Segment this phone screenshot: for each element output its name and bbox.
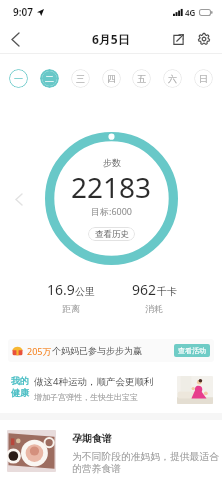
button[interactable]: 六 bbox=[163, 69, 182, 88]
staticText: 为不同阶段的准妈妈，提供最适合 的营养食谱 bbox=[72, 451, 219, 475]
staticText: 四 bbox=[107, 73, 116, 84]
staticText: 健康 bbox=[11, 387, 29, 398]
staticText: 6月5日 bbox=[92, 31, 130, 47]
button[interactable]: 一 bbox=[9, 69, 28, 88]
button[interactable]: 孕期食谱 bbox=[0, 420, 222, 480]
staticText: 4G bbox=[185, 7, 196, 18]
button[interactable]: Settings bbox=[191, 26, 217, 52]
staticText: 目标:6000 bbox=[91, 205, 133, 217]
staticText: 五 bbox=[137, 73, 146, 84]
staticText: 我的 bbox=[11, 375, 29, 386]
staticText: 一 bbox=[14, 73, 23, 84]
staticText: 距离 bbox=[62, 303, 80, 314]
button[interactable]: 五 bbox=[132, 69, 151, 88]
button[interactable]: 二 bbox=[40, 69, 59, 88]
button[interactable]: 我的 bbox=[0, 370, 222, 413]
staticText: 增加子宫弹性，生快生出宝宝 bbox=[34, 392, 138, 402]
staticText: 步数 bbox=[103, 157, 121, 168]
button[interactable]: 三 bbox=[71, 69, 90, 88]
button[interactable]: 查看历史 bbox=[88, 227, 135, 241]
staticText: 公里 bbox=[75, 285, 95, 298]
staticText: 日 bbox=[199, 73, 208, 84]
button[interactable]: 16.9 bbox=[33, 280, 109, 314]
button[interactable]: Previous day bbox=[10, 190, 28, 208]
staticText: 962 bbox=[132, 280, 157, 299]
button[interactable]: 查看活动 bbox=[174, 344, 210, 357]
staticText: 做这4种运动，顺产会更顺利 bbox=[34, 375, 154, 388]
staticText: 16.9 bbox=[47, 280, 75, 299]
staticText: 查看历史 bbox=[95, 229, 129, 240]
staticText: 孕期食谱 bbox=[72, 432, 112, 445]
button[interactable]: 日 bbox=[194, 69, 213, 88]
staticText: 千卡 bbox=[157, 285, 177, 298]
button[interactable]: 四 bbox=[102, 69, 121, 88]
staticText: 个妈妈已参与步步为赢 bbox=[52, 345, 142, 356]
staticText: 二 bbox=[45, 73, 54, 84]
button[interactable]: 205万 bbox=[8, 339, 214, 362]
staticText: 六 bbox=[168, 73, 177, 84]
staticText: 消耗 bbox=[145, 303, 163, 314]
staticText: 9:07 bbox=[13, 5, 33, 19]
button[interactable]: 962 bbox=[116, 280, 192, 314]
staticText: 查看活动 bbox=[178, 346, 206, 355]
staticText: 三 bbox=[76, 73, 85, 84]
button[interactable]: Back bbox=[0, 24, 30, 54]
staticText: 205万 bbox=[27, 345, 52, 357]
button[interactable]: Share bbox=[165, 26, 191, 52]
staticText: 22183 bbox=[71, 168, 152, 206]
